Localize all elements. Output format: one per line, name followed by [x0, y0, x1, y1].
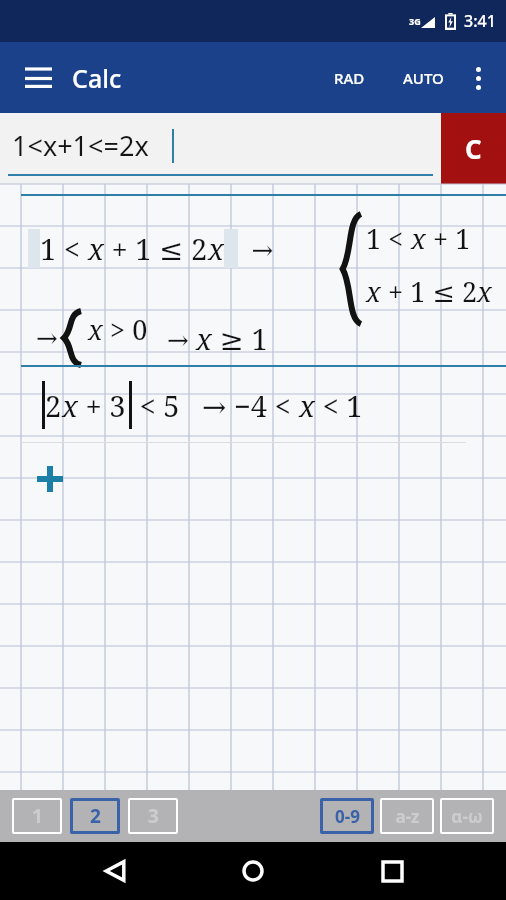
staticText: →: [167, 321, 196, 356]
button[interactable]: Menu: [14, 54, 62, 102]
staticText: 1: [32, 803, 43, 829]
button[interactable]: 2: [70, 798, 120, 834]
button[interactable]: AUTO: [391, 58, 456, 98]
staticText: x: [366, 273, 381, 310]
staticText: 0-9: [335, 805, 360, 828]
staticText: ≥ 1: [103, 362, 155, 365]
staticText: 1 <: [366, 220, 411, 257]
staticText: ≥ 1: [212, 319, 268, 358]
button[interactable]: More options: [456, 56, 500, 100]
staticText: 1<x+1<=2x: [12, 127, 149, 164]
staticText: + 1 ≤ 2: [381, 273, 477, 310]
staticText: →: [238, 231, 274, 266]
button[interactable]: Recents: [368, 847, 416, 895]
button[interactable]: a-z: [380, 798, 434, 834]
staticText: x: [196, 319, 212, 358]
button[interactable]: 3: [128, 798, 178, 834]
button[interactable]: C: [441, 113, 506, 184]
staticText: x: [62, 386, 78, 425]
staticText: < 1: [315, 386, 363, 425]
staticText: x: [208, 229, 224, 268]
staticText: →: [36, 323, 58, 353]
staticText: 3:41: [464, 10, 496, 32]
staticText: > 0: [103, 311, 148, 348]
staticText: Calc: [72, 61, 122, 95]
button[interactable]: Add expression: [0, 443, 100, 515]
button[interactable]: Back: [91, 847, 139, 895]
button[interactable]: 2: [0, 367, 506, 443]
button[interactable]: 1<x+1<=2x: [0, 113, 441, 184]
button[interactable]: 1 <: [0, 196, 506, 365]
staticText: + 3: [78, 386, 126, 425]
staticText: x: [88, 311, 103, 348]
staticText: + 1: [426, 220, 471, 257]
staticText: < 5 → −4 <: [132, 386, 299, 425]
staticText: 2: [45, 386, 62, 425]
staticText: α-ω: [451, 805, 483, 828]
staticText: 3: [148, 803, 159, 829]
button[interactable]: 1: [12, 798, 62, 834]
staticText: x: [299, 386, 315, 425]
staticText: RAD: [334, 68, 365, 88]
staticText: C: [465, 131, 482, 166]
staticText: x: [477, 273, 492, 310]
staticText: AUTO: [403, 68, 444, 88]
button[interactable]: Home: [229, 847, 277, 895]
button[interactable]: 0-9: [320, 798, 374, 834]
staticText: x: [411, 220, 426, 257]
staticText: 1 <: [40, 229, 88, 268]
staticText: 3G: [409, 15, 421, 27]
staticText: x: [88, 229, 104, 268]
staticText: + 1 ≤ 2: [104, 229, 208, 268]
staticText: 2: [90, 803, 101, 829]
staticText: a-z: [395, 805, 420, 828]
button[interactable]: α-ω: [440, 798, 494, 834]
button[interactable]: RAD: [322, 58, 377, 98]
